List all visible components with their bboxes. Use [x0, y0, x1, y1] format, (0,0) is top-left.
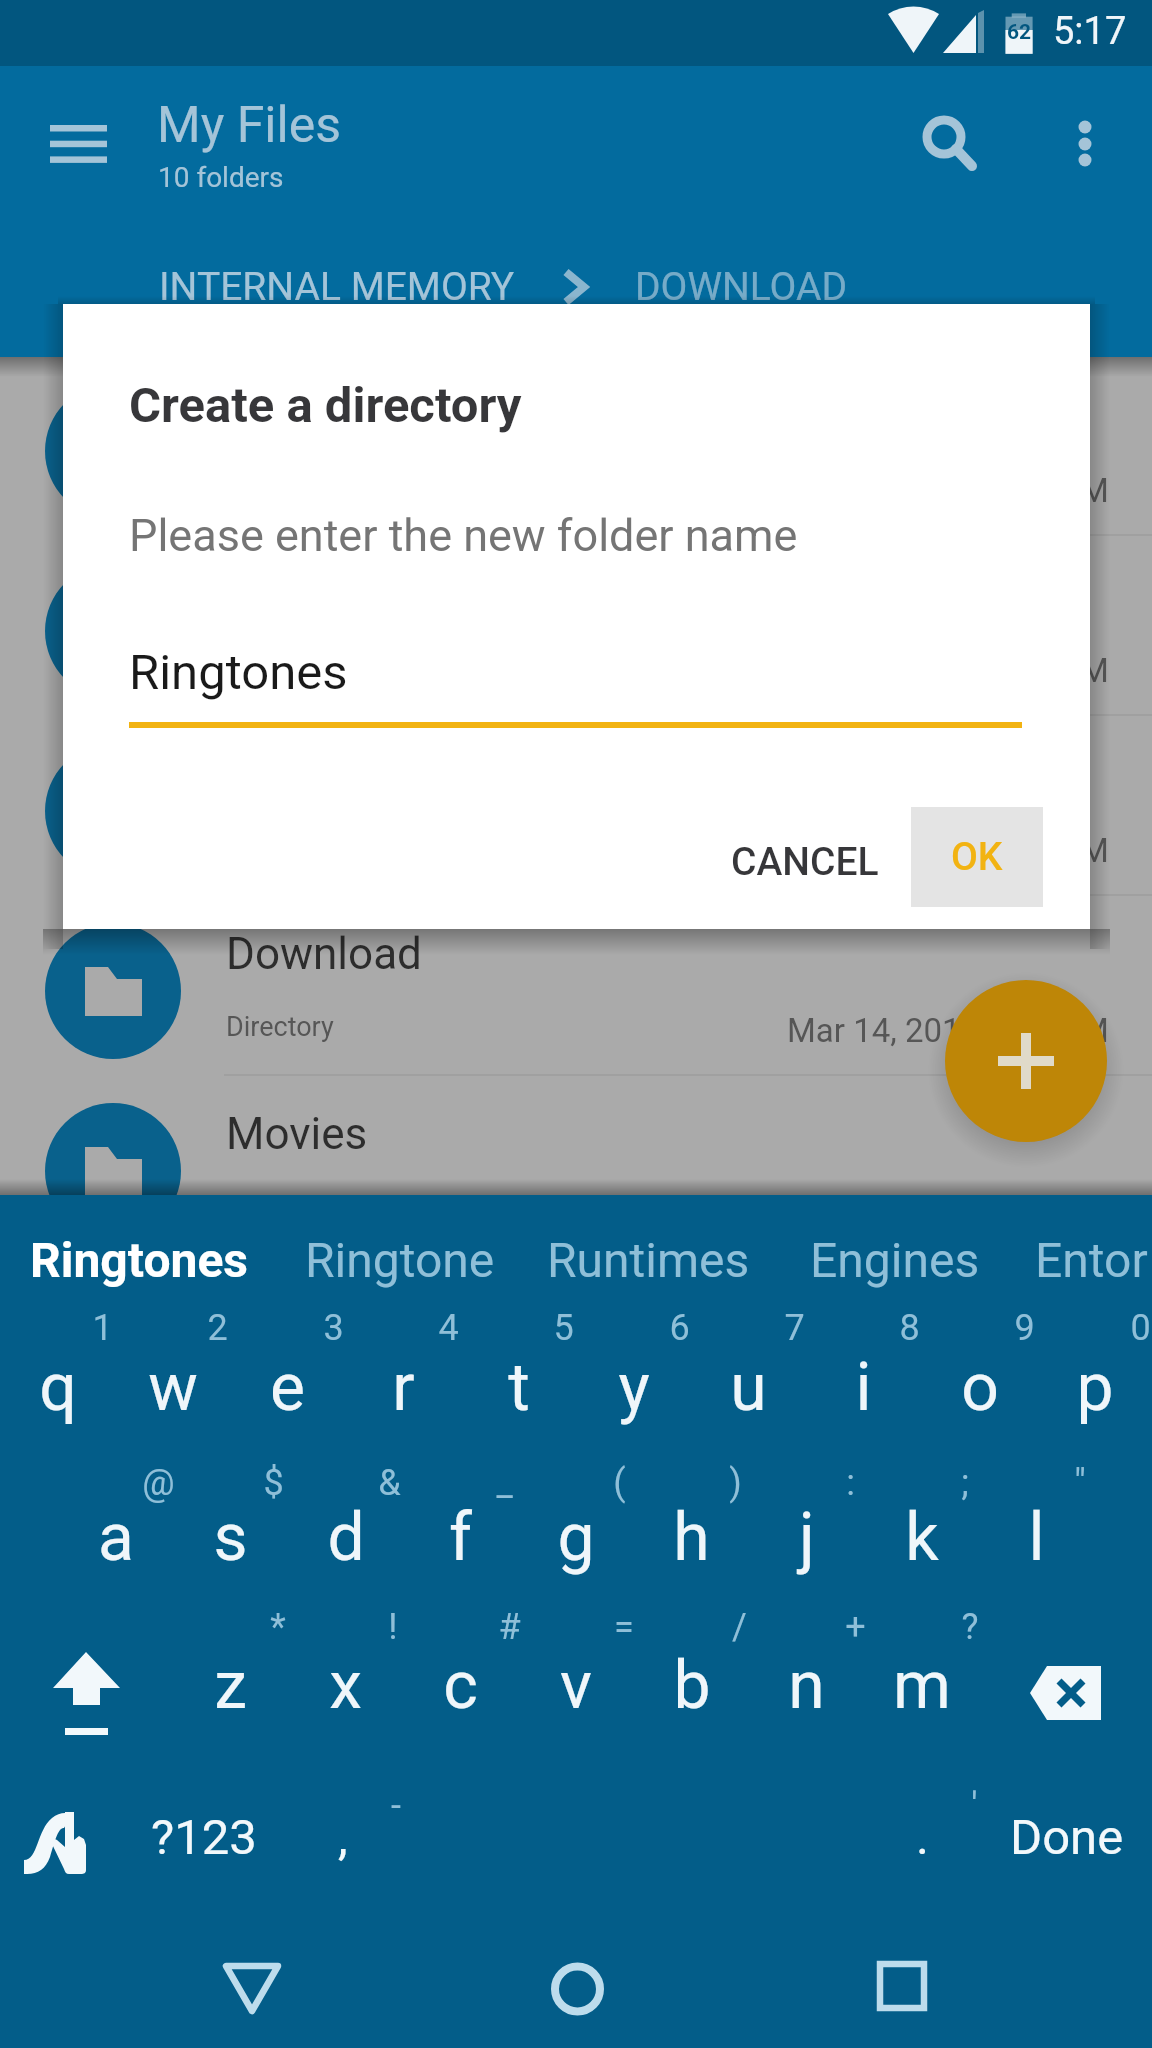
staticText: My Files [157, 96, 341, 155]
staticText: o [961, 1349, 999, 1426]
button[interactable]: Create new folder [945, 980, 1107, 1142]
staticText: / [732, 1606, 747, 1648]
button[interactable]: , [338, 1809, 348, 1889]
button[interactable]: Ringtones [30, 1232, 248, 1308]
button[interactable]: m [864, 1623, 979, 1747]
button[interactable]: x [288, 1623, 403, 1747]
button[interactable]: More options [1035, 87, 1135, 187]
button[interactable]: Entor [1035, 1232, 1148, 1308]
button[interactable]: Change input method [14, 1800, 110, 1890]
button[interactable]: Music [0, 1258, 1152, 1438]
button[interactable]: t [461, 1325, 576, 1449]
button[interactable]: Alarms [0, 358, 1152, 538]
staticText: Ringtones [129, 644, 348, 701]
staticText: CANCEL [731, 839, 879, 885]
button[interactable]: c [403, 1623, 518, 1747]
staticText: r [392, 1349, 415, 1426]
staticText: ) [729, 1462, 742, 1504]
button[interactable]: Runtimes [547, 1232, 750, 1308]
staticText: Mar 14, 2016 5:17 PM [787, 1371, 1109, 1410]
staticText: 2 [207, 1307, 228, 1349]
button[interactable]: y [576, 1325, 691, 1449]
button[interactable]: CANCEL [701, 812, 909, 912]
staticText: f [449, 1499, 472, 1576]
button[interactable]: h [634, 1475, 749, 1599]
staticText: Mar 14, 2016 5:17 PM [787, 831, 1109, 870]
staticText: Movies [226, 1108, 368, 1160]
staticText: n [788, 1647, 825, 1724]
button[interactable]: Back [192, 1922, 312, 2042]
button[interactable]: a [58, 1475, 173, 1599]
button[interactable]: Home [517, 1922, 637, 2042]
staticText: g [557, 1499, 595, 1576]
button[interactable]: DCIM [0, 718, 1152, 898]
button[interactable]: v [518, 1623, 633, 1747]
button[interactable]: j [749, 1475, 864, 1599]
button[interactable]: p [1037, 1325, 1152, 1449]
button[interactable]: INTERNAL MEMORY [159, 264, 515, 310]
staticText: l [1028, 1499, 1045, 1576]
staticText: Directory [226, 1191, 334, 1223]
button[interactable]: s [173, 1475, 288, 1599]
staticText: y [618, 1349, 650, 1426]
staticText: Entor [1035, 1232, 1148, 1288]
button[interactable]: Open navigation drawer [32, 92, 128, 188]
staticText: k [905, 1499, 939, 1576]
button[interactable]: Shift [10, 1625, 160, 1755]
button[interactable]: ?123 [151, 1809, 257, 1889]
staticText: OK [951, 834, 1003, 880]
button[interactable]: Done [1010, 1809, 1124, 1889]
staticText: + [845, 1606, 866, 1648]
staticText: Ringtones [30, 1232, 248, 1288]
staticText: # [498, 1606, 521, 1648]
button[interactable]: Download [0, 898, 1152, 1078]
staticText: @ [142, 1462, 175, 1504]
staticText: Done [1010, 1809, 1124, 1866]
button[interactable]: o [922, 1325, 1037, 1449]
staticText: & [378, 1462, 401, 1504]
staticText: ' [971, 1785, 978, 1827]
staticText: Directory [226, 1371, 334, 1403]
staticText: Mar 14, 2016 5:17 PM [787, 1191, 1109, 1230]
button[interactable]: n [749, 1623, 864, 1747]
button[interactable]: Backspace [1020, 1655, 1120, 1735]
staticText: Directory [226, 1011, 334, 1043]
staticText: 0 [1130, 1307, 1151, 1349]
button[interactable]: f [403, 1475, 518, 1599]
button[interactable]: k [864, 1475, 979, 1599]
button[interactable]: . [916, 1809, 929, 1889]
button[interactable]: q [0, 1325, 115, 1449]
staticText: b [673, 1647, 711, 1724]
button[interactable]: OK [911, 807, 1043, 907]
button[interactable]: b [634, 1623, 749, 1747]
button[interactable]: i [806, 1325, 921, 1449]
staticText: 4 [438, 1307, 459, 1349]
staticText: x [329, 1647, 362, 1724]
button[interactable]: Search [894, 87, 994, 187]
staticText: i [855, 1349, 872, 1426]
staticText: p [1076, 1349, 1114, 1426]
staticText: - [391, 1785, 401, 1827]
button[interactable]: Recent apps [842, 1922, 962, 2042]
staticText: . [916, 1809, 929, 1866]
staticText: * [270, 1606, 286, 1648]
button[interactable]: Ringtone [305, 1232, 495, 1308]
button[interactable]: Engines [810, 1232, 980, 1308]
staticText: $ [263, 1462, 284, 1504]
button[interactable]: Android [0, 538, 1152, 718]
button[interactable]: DOWNLOAD [635, 264, 848, 310]
button[interactable]: z [173, 1623, 288, 1747]
button[interactable]: Movies [0, 1078, 1152, 1258]
button[interactable]: e [230, 1325, 345, 1449]
button[interactable]: g [518, 1475, 633, 1599]
button[interactable]: u [691, 1325, 806, 1449]
button[interactable]: d [288, 1475, 403, 1599]
staticText: ? [961, 1606, 979, 1648]
button[interactable]: w [115, 1325, 230, 1449]
button[interactable]: l [979, 1475, 1094, 1599]
staticText: Download [226, 928, 422, 980]
button[interactable]: r [346, 1325, 461, 1449]
